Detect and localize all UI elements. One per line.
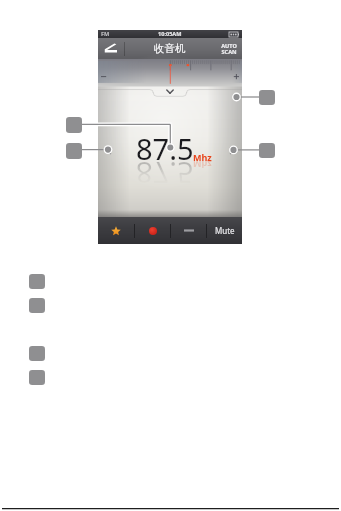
- button[interactable]: Reference numeral callout: [66, 117, 82, 133]
- staticText: Mhz: [193, 151, 212, 163]
- button[interactable]: Back: [98, 38, 123, 59]
- staticText: AUTO SCAN: [221, 42, 237, 56]
- staticText: Mute: [215, 225, 235, 236]
- button[interactable]: Reference numeral callout: [259, 90, 275, 105]
- button[interactable]: Reference numeral callout: [29, 274, 45, 289]
- staticText: 收音机: [154, 42, 186, 55]
- button[interactable]: Volume: [171, 217, 206, 244]
- button[interactable]: Previous station: [99, 141, 117, 159]
- button[interactable]: Record: [135, 217, 170, 244]
- staticText: Mhz: [193, 159, 212, 171]
- button[interactable]: Reference numeral callout: [29, 370, 45, 385]
- staticText: 10:05AM: [158, 30, 182, 38]
- button[interactable]: Next station: [223, 141, 241, 159]
- button[interactable]: Mute: [207, 217, 242, 244]
- staticText: 87.5: [136, 129, 194, 168]
- button[interactable]: Reference numeral callout: [66, 143, 82, 159]
- button[interactable]: Reference numeral callout: [259, 143, 275, 158]
- button[interactable]: Reference numeral callout: [29, 346, 45, 361]
- button[interactable]: Favourite: [98, 217, 134, 244]
- button[interactable]: Reference numeral callout: [29, 298, 45, 313]
- button[interactable]: AUTO SCAN: [216, 38, 242, 59]
- staticText: FM: [101, 30, 110, 38]
- staticText: 87.5: [136, 154, 194, 193]
